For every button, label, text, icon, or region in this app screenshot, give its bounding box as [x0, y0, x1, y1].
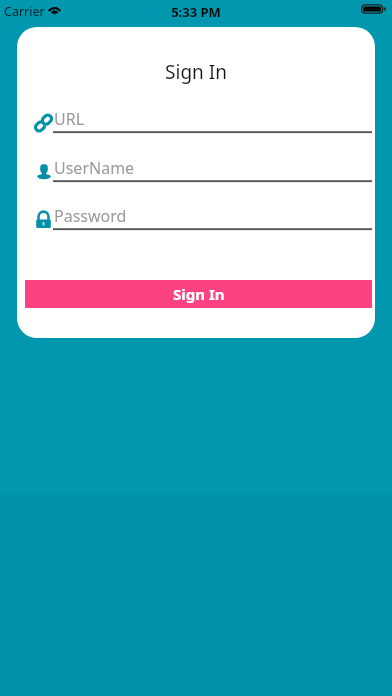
staticText: URL: [54, 108, 85, 130]
staticText: Sign In: [173, 284, 225, 304]
other: Password: [34, 210, 53, 228]
button[interactable]: [34, 156, 372, 181]
other: User name: [35, 162, 53, 180]
button[interactable]: [34, 204, 372, 229]
staticText: Carrier: [4, 3, 45, 20]
button[interactable]: [34, 107, 372, 132]
staticText: Sign In: [17, 59, 375, 85]
staticText: Password: [54, 205, 127, 227]
staticText: 5:33 PM: [0, 3, 392, 21]
other: URL: [34, 114, 53, 132]
button[interactable]: Sign In: [25, 280, 372, 308]
staticText: UserName: [54, 157, 135, 179]
